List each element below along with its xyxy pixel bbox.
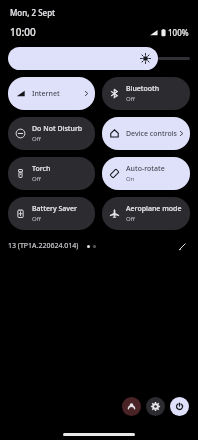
- staticText: 10:00: [10, 25, 36, 39]
- staticText: Do Not Disturb: [32, 124, 83, 134]
- button[interactable]: Internet: [8, 77, 95, 110]
- staticText: Mon, 2 Sept: [10, 7, 56, 18]
- button[interactable]: [8, 47, 190, 70]
- staticText: Auto-rotate: [126, 164, 165, 174]
- staticText: Off: [32, 215, 41, 223]
- staticText: Off: [126, 95, 135, 103]
- staticText: Torch: [32, 164, 51, 174]
- staticText: Off: [32, 135, 41, 143]
- staticText: Bluetooth: [126, 84, 160, 94]
- button[interactable]: Torch: [8, 157, 95, 190]
- staticText: On: [126, 175, 135, 183]
- button[interactable]: Device controls: [102, 117, 190, 150]
- button[interactable]: Auto-rotate: [102, 157, 190, 190]
- button[interactable]: Settings: [146, 397, 165, 416]
- button[interactable]: Bluetooth: [102, 77, 190, 110]
- staticText: Device controls: [126, 129, 178, 139]
- button[interactable]: Battery Saver: [8, 197, 95, 230]
- staticText: Off: [32, 175, 41, 183]
- button[interactable]: Do Not Disturb: [8, 117, 95, 150]
- staticText: Battery Saver: [32, 204, 77, 214]
- staticText: Internet: [32, 89, 60, 99]
- staticText: Aeroplane mode: [126, 204, 182, 214]
- button[interactable]: Edit tiles: [175, 239, 189, 253]
- button[interactable]: Power: [170, 397, 189, 416]
- staticText: 13 (TP1A.220624.014): [8, 241, 79, 251]
- button[interactable]: Aeroplane mode: [102, 197, 190, 230]
- staticText: 100%: [168, 27, 189, 38]
- button[interactable]: User profile: [122, 397, 141, 416]
- staticText: Off: [126, 215, 135, 223]
